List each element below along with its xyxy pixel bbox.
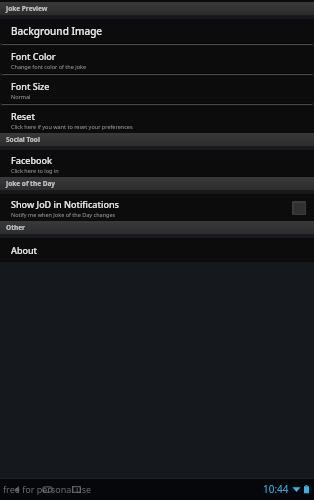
staticText: Change font color of the joke [11,63,87,70]
button[interactable]: Facebook [0,150,314,177]
button[interactable]: Background Image [0,19,314,43]
button[interactable]: Show JoD in Notifications [0,194,314,221]
staticText: free for personal use [3,483,92,495]
button[interactable]: Recent apps [70,483,83,496]
button[interactable]: Home [41,483,54,496]
staticText: Reset [11,110,35,122]
staticText: Facebook [11,154,53,166]
staticText: Social Tool [6,135,40,144]
button[interactable]: Reset [0,106,314,133]
staticText: Font Color [11,50,56,62]
staticText: Background Image [11,24,103,38]
button[interactable]: Back [12,483,25,496]
staticText: Click here if you want to reset your pre… [11,123,133,130]
staticText: Other [6,223,25,232]
staticText: Normal [11,93,31,100]
button[interactable]: Font Size [0,76,314,103]
staticText: Joke Preview [6,4,48,13]
staticText: Notify me when Joke of the Day changes [11,211,116,218]
staticText: 10:44 [263,482,289,496]
staticText: Font Size [11,80,50,92]
staticText: Click here to log in [11,167,59,174]
staticText: Show JoD in Notifications [11,198,119,210]
staticText: Joke of the Day [6,179,56,188]
button[interactable]: Font Color [0,46,314,73]
button[interactable]: Show Joke of the Day in notifications to… [292,201,306,215]
staticText: About [11,244,38,256]
button[interactable]: About [0,238,314,262]
